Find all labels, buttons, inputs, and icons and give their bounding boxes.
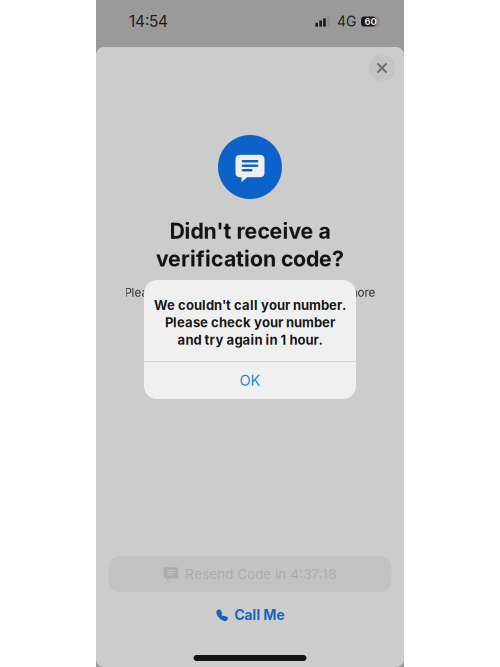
staticText: Please check your number and try once mo… [124, 286, 375, 300]
staticText: Call Me [234, 606, 284, 623]
staticText: Please check your number [165, 315, 335, 330]
staticText: Didn't receive a [169, 218, 330, 244]
staticText: We couldn't call your number. [154, 297, 346, 313]
button[interactable]: Call Me [160, 603, 340, 627]
staticText: 14:54 [129, 12, 168, 31]
staticText: Resend Code in 4:37:18 [185, 566, 336, 582]
staticText: OK [239, 371, 260, 389]
button[interactable]: Resend Code in 4:37:18 [108, 556, 391, 592]
staticText: 60 [364, 16, 376, 27]
button[interactable]: OK [144, 362, 356, 399]
staticText: 4G [337, 13, 356, 30]
button[interactable]: Close [362, 48, 402, 88]
staticText: and try again in 1 hour. [177, 332, 322, 348]
staticText: verification code? [156, 246, 344, 272]
